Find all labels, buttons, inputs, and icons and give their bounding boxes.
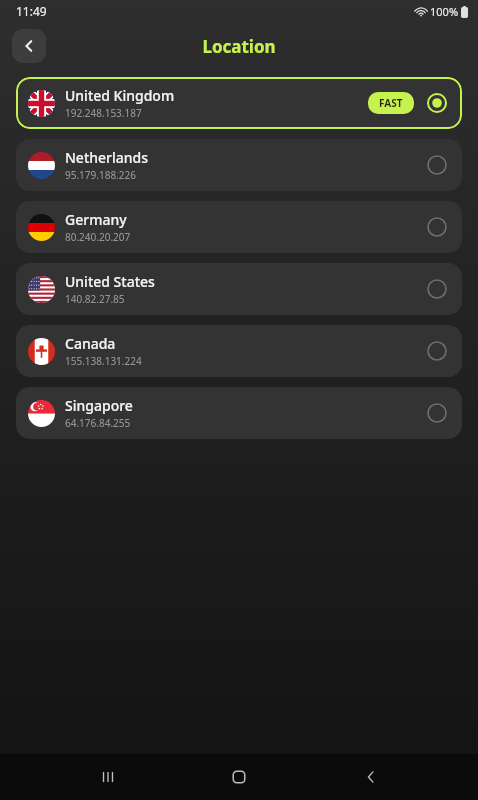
staticText: 100% [430,4,459,19]
button[interactable]: Netherlands [16,139,462,191]
staticText: Canada [65,334,116,353]
staticText: 64.176.84.255 [65,416,131,430]
staticText: 80.240.20.207 [65,230,131,244]
staticText: FAST [379,96,403,110]
button[interactable]: Select Netherlands [424,152,450,178]
staticText: United Kingdom [65,86,175,105]
staticText: Singapore [65,396,133,415]
staticText: 192.248.153.187 [65,106,142,120]
staticText: 11:49 [16,3,47,19]
button[interactable]: Select Singapore [424,400,450,426]
button[interactable]: United Kingdom [16,77,462,129]
staticText: 95.179.188.226 [65,168,136,182]
button[interactable]: Select Germany [424,214,450,240]
button[interactable]: Home [215,754,263,800]
staticText: 140.82.27.85 [65,292,125,306]
button[interactable]: Back [12,29,46,63]
staticText: Location [202,35,276,58]
button[interactable]: Canada [16,325,462,377]
button[interactable]: Select Canada [424,338,450,364]
staticText: Germany [65,210,127,229]
button[interactable]: FAST [368,92,414,114]
button[interactable]: Selected [424,90,450,116]
button[interactable]: Germany [16,201,462,253]
button[interactable]: United States [16,263,462,315]
button[interactable]: Back [347,754,395,800]
staticText: 155.138.131.224 [65,354,142,368]
button[interactable]: Singapore [16,387,462,439]
staticText: United States [65,272,155,291]
button[interactable]: Select United States [424,276,450,302]
button[interactable]: Recents [84,754,132,800]
staticText: Netherlands [65,148,149,167]
